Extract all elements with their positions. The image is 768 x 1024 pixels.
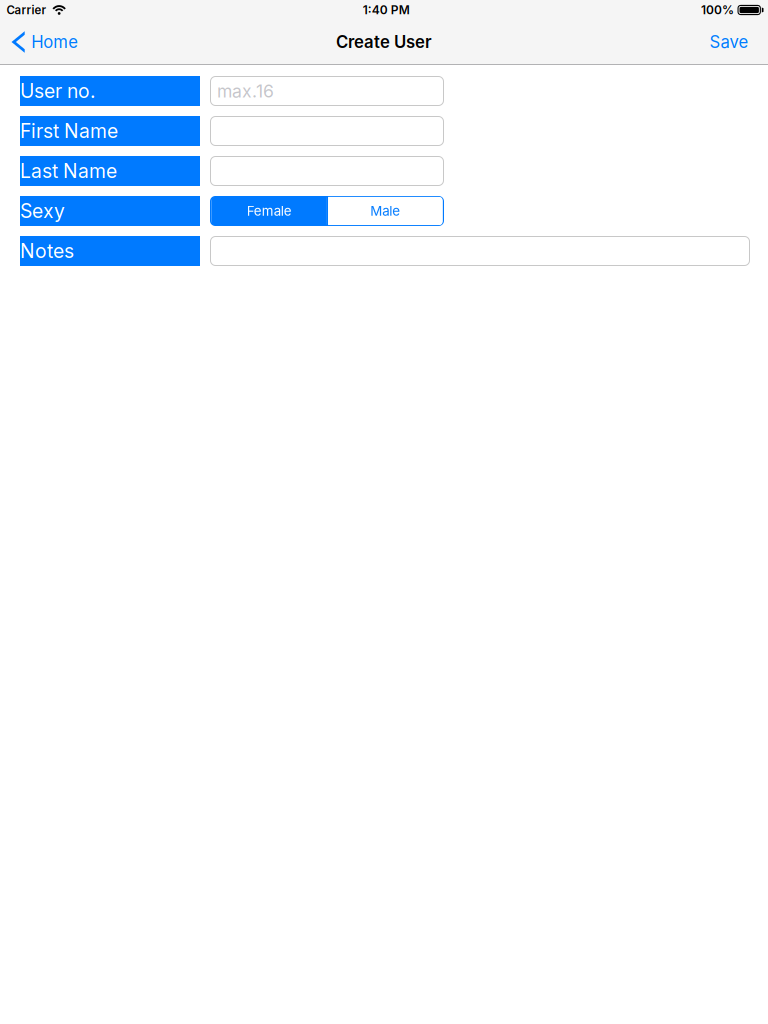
button[interactable]: User no. (210, 76, 444, 106)
button[interactable]: First Name (210, 116, 444, 146)
staticText: Male (370, 203, 400, 219)
staticText: Create User (336, 32, 432, 52)
staticText: User no. (20, 79, 96, 103)
button[interactable]: Home (0, 20, 88, 64)
staticText: 100% (701, 3, 734, 17)
staticText: 1:40 PM (363, 3, 410, 17)
staticText: Home (31, 32, 78, 52)
button[interactable]: Last Name (210, 156, 444, 186)
staticText: First Name (20, 119, 118, 143)
staticText: Female (247, 203, 292, 219)
staticText: Carrier (6, 3, 46, 17)
staticText: max.16 (217, 80, 274, 102)
staticText: Notes (20, 239, 74, 263)
staticText: Save (709, 32, 748, 52)
staticText: Sexy (20, 199, 65, 223)
staticText: Last Name (20, 159, 117, 183)
button[interactable]: Male (328, 197, 443, 225)
button[interactable]: Notes (210, 236, 750, 266)
button[interactable]: Female (211, 197, 327, 225)
button[interactable]: Save (697, 20, 768, 64)
